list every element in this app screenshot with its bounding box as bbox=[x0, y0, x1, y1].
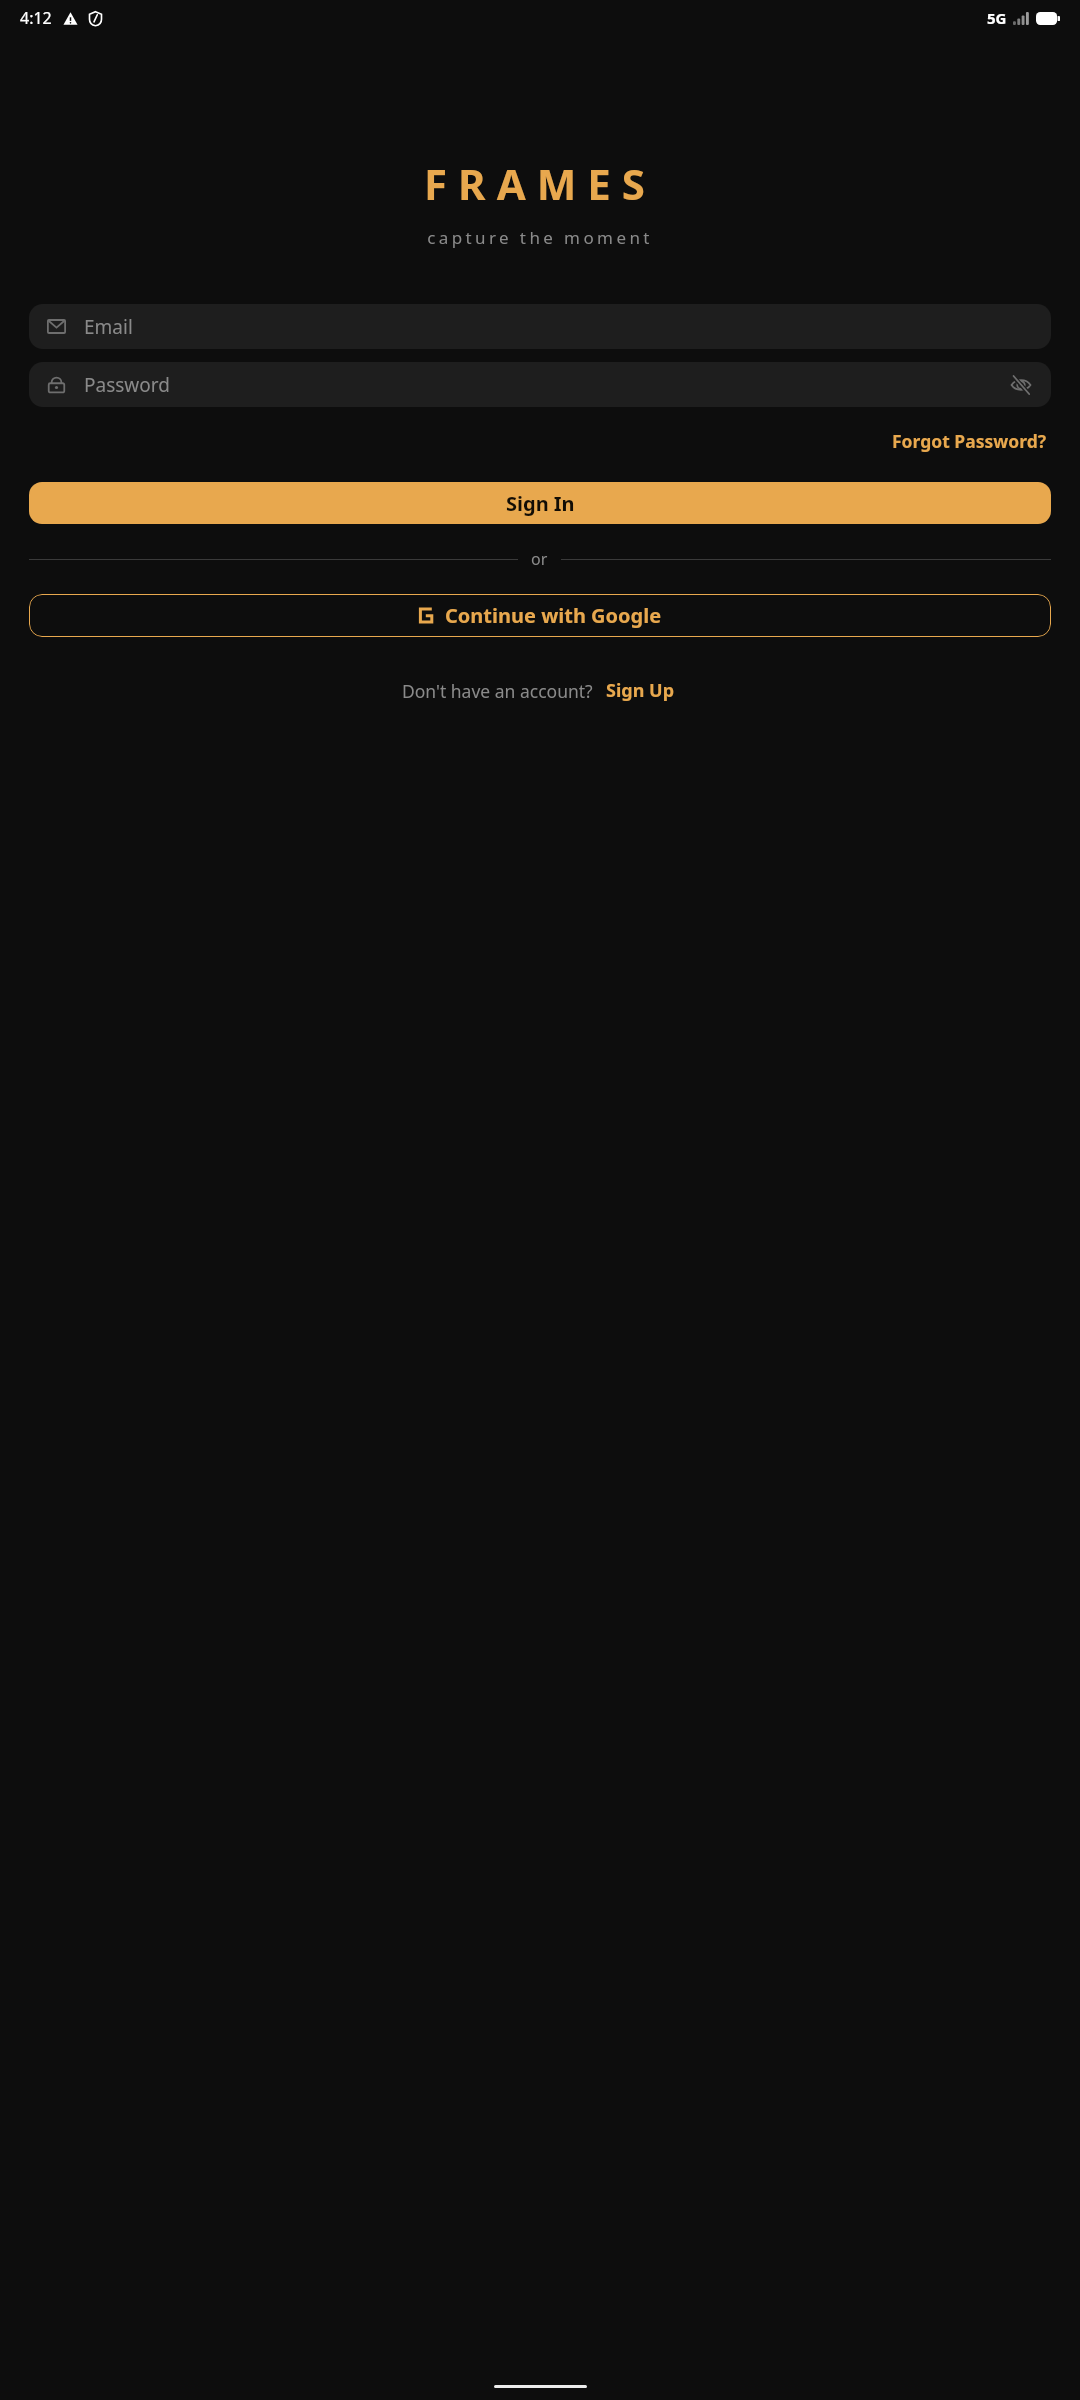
button[interactable]: Email bbox=[29, 304, 1051, 349]
button[interactable]: Sign In bbox=[29, 482, 1051, 524]
staticText: Password bbox=[84, 372, 1008, 398]
button[interactable]: Show password bbox=[1008, 372, 1034, 398]
staticText: capture the moment bbox=[427, 226, 653, 249]
staticText: Forgot Password? bbox=[892, 429, 1047, 453]
button[interactable]: Password bbox=[29, 362, 1051, 407]
staticText: Sign In bbox=[506, 490, 575, 517]
staticText: Continue with Google bbox=[445, 602, 662, 629]
button[interactable]: Forgot Password? bbox=[888, 423, 1051, 459]
staticText: Sign Up bbox=[606, 678, 675, 703]
staticText: 4:12 bbox=[20, 7, 52, 29]
staticText: or bbox=[531, 548, 548, 570]
button[interactable]: Continue with Google bbox=[29, 594, 1051, 637]
staticText: FRAMES bbox=[424, 155, 656, 212]
staticText: Don't have an account? bbox=[402, 679, 593, 703]
button[interactable]: Sign Up bbox=[603, 673, 678, 708]
staticText: Email bbox=[84, 314, 1034, 340]
staticText: 5G bbox=[987, 8, 1007, 28]
